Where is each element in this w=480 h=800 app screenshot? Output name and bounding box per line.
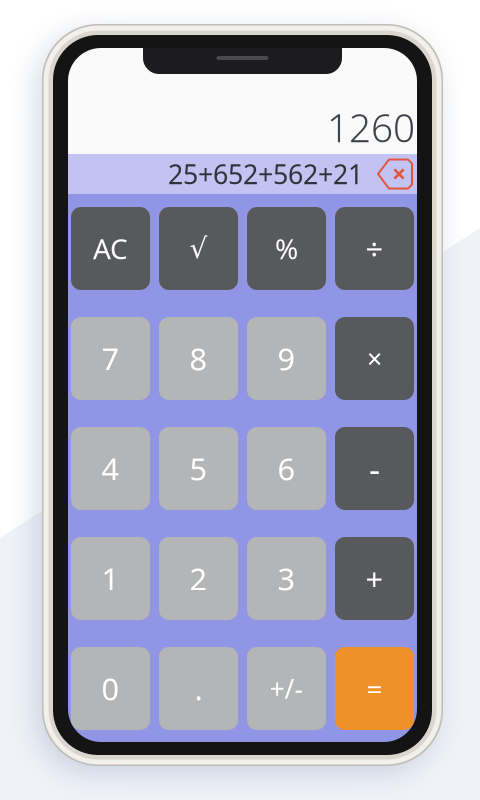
button[interactable]: ÷ <box>335 207 414 290</box>
staticText: +/- <box>269 671 303 706</box>
staticText: 25+652+562+21 <box>168 156 363 192</box>
staticText: 1260 <box>327 102 415 153</box>
staticText: √ <box>189 233 207 264</box>
staticText: 4 <box>101 448 119 489</box>
button[interactable]: 7 <box>71 317 150 400</box>
button[interactable]: AC <box>71 207 150 290</box>
button[interactable]: . <box>159 647 238 730</box>
staticText: ÷ <box>365 228 383 269</box>
staticText: 9 <box>277 338 295 379</box>
button[interactable]: 5 <box>159 427 238 510</box>
staticText: 6 <box>277 448 295 489</box>
staticText: + <box>365 558 383 599</box>
staticText: AC <box>93 230 128 267</box>
button[interactable]: 9 <box>247 317 326 400</box>
button[interactable]: + <box>335 537 414 620</box>
button[interactable]: = <box>335 647 414 730</box>
staticText: 5 <box>189 448 207 489</box>
button[interactable]: - <box>335 427 414 510</box>
button[interactable]: Backspace <box>377 158 413 189</box>
button[interactable]: 6 <box>247 427 326 510</box>
button[interactable]: √ <box>159 207 238 290</box>
staticText: 0 <box>101 668 119 709</box>
button[interactable]: 2 <box>159 537 238 620</box>
staticText: 1 <box>101 558 119 599</box>
staticText: = <box>366 670 382 707</box>
staticText: 3 <box>277 558 295 599</box>
staticText: 2 <box>189 558 207 599</box>
button[interactable]: % <box>247 207 326 290</box>
staticText: × <box>367 341 382 376</box>
button[interactable]: +/- <box>247 647 326 730</box>
button[interactable]: 3 <box>247 537 326 620</box>
button[interactable]: 1 <box>71 537 150 620</box>
button[interactable]: 4 <box>71 427 150 510</box>
staticText: . <box>194 668 202 709</box>
staticText: 8 <box>189 338 207 379</box>
staticText: - <box>369 445 380 491</box>
button[interactable]: × <box>335 317 414 400</box>
button[interactable]: 8 <box>159 317 238 400</box>
staticText: % <box>275 230 298 267</box>
button[interactable]: 0 <box>71 647 150 730</box>
staticText: 7 <box>101 338 119 379</box>
